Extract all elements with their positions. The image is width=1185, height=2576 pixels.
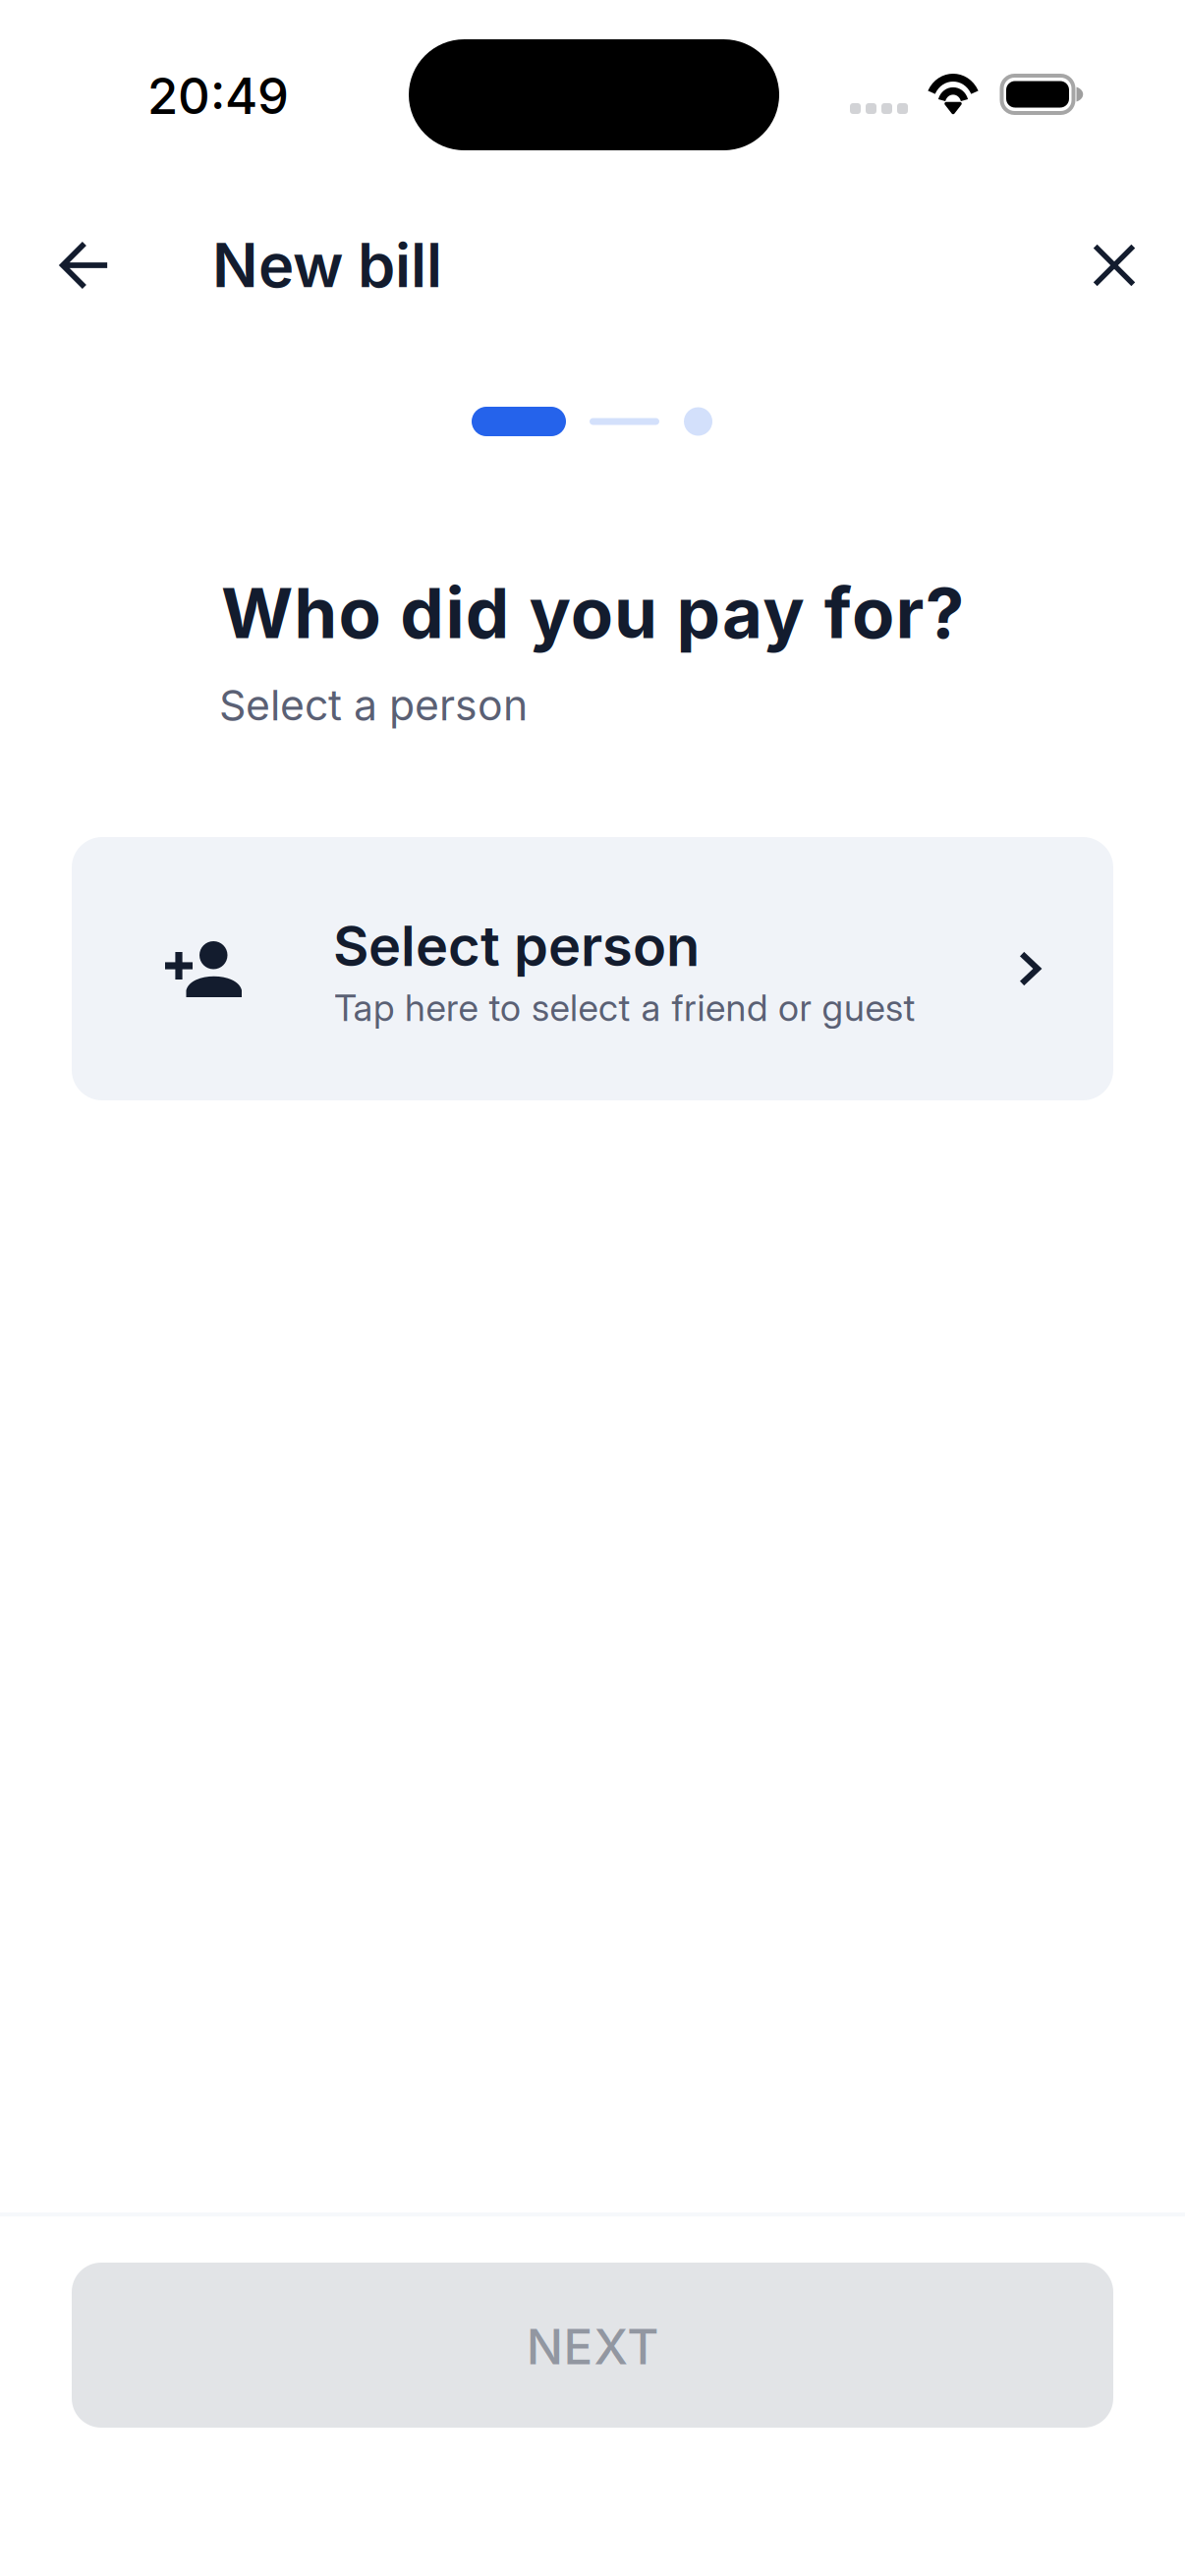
- button[interactable]: New bill: [212, 212, 468, 318]
- staticText: 20:49: [147, 66, 289, 126]
- staticText: NEXT: [526, 2317, 659, 2376]
- staticText: Select person: [333, 913, 700, 979]
- staticText: Who did you pay for?: [221, 571, 965, 655]
- staticText: Select a person: [219, 680, 528, 731]
- button[interactable]: Close: [1061, 212, 1167, 318]
- staticText: Tap here to select a friend or guest: [334, 985, 915, 1030]
- staticText: New bill: [212, 229, 442, 302]
- button[interactable]: Select person: [72, 837, 1113, 1100]
- button[interactable]: NEXT: [72, 2263, 1113, 2428]
- button[interactable]: Back: [31, 212, 138, 318]
